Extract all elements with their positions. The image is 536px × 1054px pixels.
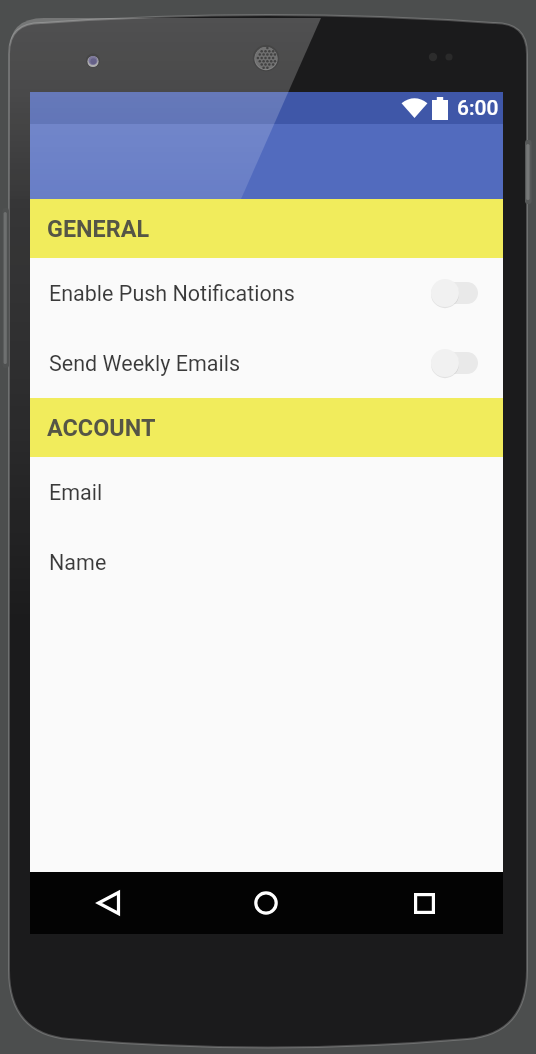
button[interactable]: Recent apps	[345, 872, 503, 934]
staticText: GENERAL	[47, 215, 150, 242]
staticText: 6:00	[457, 96, 499, 121]
staticText: Enable Push Notifications	[49, 281, 295, 306]
button[interactable]: Email	[30, 457, 503, 527]
staticText: Name	[49, 550, 107, 575]
button[interactable]: Home	[187, 872, 345, 934]
button[interactable]: Name	[30, 527, 503, 597]
button[interactable]: Back	[30, 872, 187, 934]
button[interactable]: GENERAL	[30, 199, 503, 258]
button[interactable]: ACCOUNT	[30, 398, 503, 457]
button[interactable]: Enable Push Notifications	[30, 258, 503, 328]
staticText: Send Weekly Emails	[49, 351, 241, 376]
button[interactable]: Send Weekly Emails	[30, 328, 503, 398]
staticText: ACCOUNT	[47, 414, 156, 441]
staticText: Email	[49, 480, 103, 505]
